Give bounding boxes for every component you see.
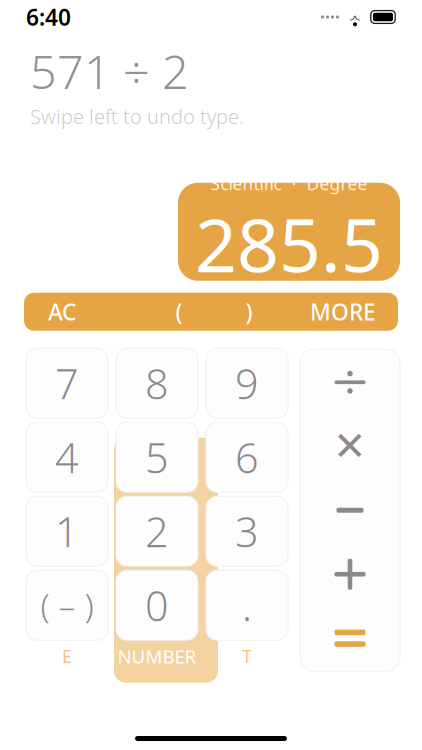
button[interactable]: 9: [206, 348, 288, 418]
staticText: 2: [145, 504, 169, 559]
staticText: ◞◟: [350, 8, 360, 21]
button[interactable]: Add: [300, 542, 400, 606]
staticText: ✕: [333, 424, 367, 469]
staticText: Swipe left to undo type.: [30, 103, 244, 130]
staticText: 0: [145, 578, 169, 633]
staticText: AC: [48, 297, 76, 327]
staticText: E: [62, 645, 72, 668]
button[interactable]: ): [214, 293, 284, 331]
button[interactable]: Equals: [300, 606, 400, 670]
button[interactable]: 2: [116, 496, 198, 566]
staticText: 285.5: [195, 195, 383, 292]
staticText: Scientific · Degree: [210, 172, 367, 195]
button[interactable]: MORE: [284, 293, 398, 331]
staticText: 3: [235, 504, 259, 559]
staticText: T: [242, 645, 252, 668]
button[interactable]: 8: [116, 348, 198, 418]
staticText: 571 ÷ 2: [30, 40, 189, 102]
button[interactable]: 7: [26, 348, 108, 418]
staticText: NUMBER: [117, 644, 196, 669]
staticText: (: [175, 297, 182, 327]
button[interactable]: 5: [116, 422, 198, 492]
button[interactable]: 0: [116, 570, 198, 640]
staticText: 7: [55, 356, 79, 411]
staticText: 8: [145, 356, 169, 411]
staticText: ( – ): [40, 583, 93, 627]
staticText: 6: [235, 430, 259, 485]
button[interactable]: 1: [26, 496, 108, 566]
button[interactable]: AC: [24, 293, 144, 331]
button[interactable]: ( – ): [26, 570, 108, 640]
button[interactable]: Subtract: [300, 478, 400, 542]
button[interactable]: 4: [26, 422, 108, 492]
staticText: 5: [145, 430, 169, 485]
button[interactable]: .: [206, 570, 288, 640]
button[interactable]: 3: [206, 496, 288, 566]
button[interactable]: 6: [206, 422, 288, 492]
staticText: MORE: [310, 297, 376, 327]
button[interactable]: (: [144, 293, 214, 331]
staticText: .: [242, 578, 252, 633]
button[interactable]: Divide: [300, 350, 400, 414]
staticText: 6:40: [26, 2, 71, 32]
staticText: 9: [235, 356, 259, 411]
staticText: 4: [55, 430, 79, 485]
staticText: 1: [55, 504, 79, 559]
button[interactable]: Multiply: [300, 414, 400, 478]
staticText: ): [245, 297, 252, 327]
